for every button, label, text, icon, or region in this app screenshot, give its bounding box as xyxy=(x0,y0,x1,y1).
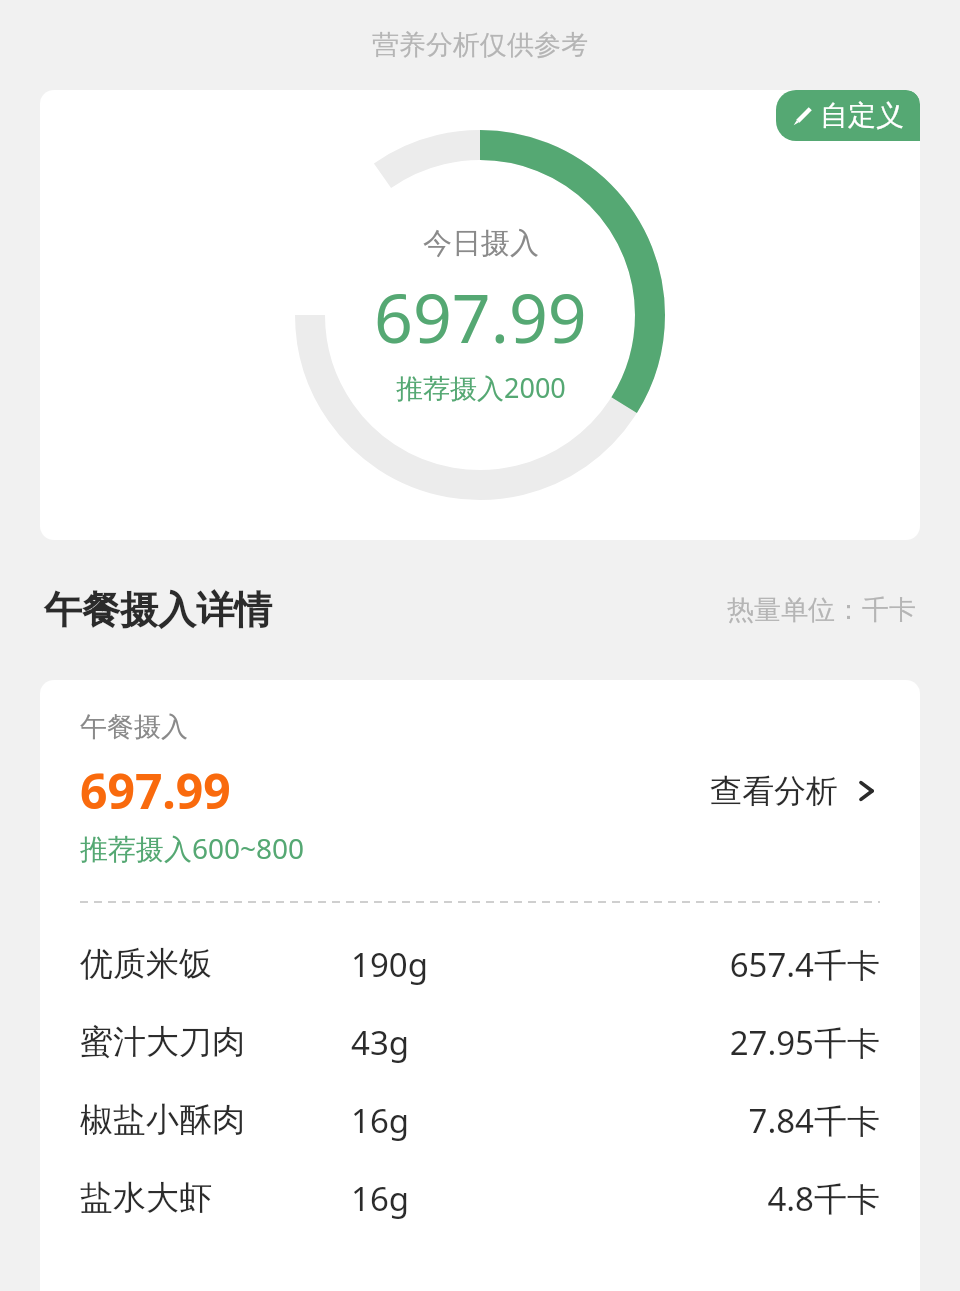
button[interactable]: 优质米饭 xyxy=(80,925,880,1003)
staticText: 推荐摄入600~800 xyxy=(80,829,305,867)
staticText: 16g xyxy=(351,1098,410,1143)
staticText: 4.8千卡 xyxy=(609,1176,880,1221)
button[interactable]: 椒盐小酥肉 xyxy=(80,1081,880,1159)
staticText: 43g xyxy=(351,1020,410,1065)
staticText: 查看分析 xyxy=(710,771,838,811)
staticText: 推荐摄入2000 xyxy=(396,369,566,406)
staticText: 午餐摄入详情 xyxy=(44,586,272,634)
button[interactable]: 自定义 xyxy=(776,90,920,141)
button[interactable]: 盐水大虾 xyxy=(80,1159,880,1237)
staticText: 27.95千卡 xyxy=(609,1020,880,1065)
staticText: 盐水大虾 xyxy=(80,1177,212,1219)
staticText: 16g xyxy=(351,1176,410,1221)
button[interactable]: 查看分析 xyxy=(690,765,880,817)
staticText: 自定义 xyxy=(820,98,904,133)
staticText: 657.4千卡 xyxy=(609,942,880,987)
staticText: 697.99 xyxy=(374,270,587,363)
staticText: 午餐摄入 xyxy=(80,710,188,744)
staticText: 190g xyxy=(351,942,428,987)
staticText: 优质米饭 xyxy=(80,943,212,985)
staticText: 营养分析仅供参考 xyxy=(372,28,588,62)
staticText: 蜜汁大刀肉 xyxy=(80,1021,245,1063)
staticText: 热量单位：千卡 xyxy=(727,593,916,627)
staticText: 7.84千卡 xyxy=(609,1098,880,1143)
staticText: 697.99 xyxy=(80,758,231,823)
button[interactable]: 蜜汁大刀肉 xyxy=(80,1003,880,1081)
staticText: 椒盐小酥肉 xyxy=(80,1099,245,1141)
staticText: 今日摄入 xyxy=(423,225,539,262)
